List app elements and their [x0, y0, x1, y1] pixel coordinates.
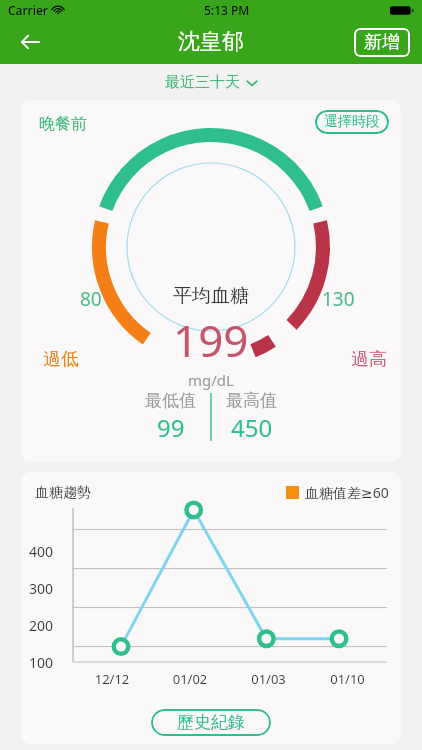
staticText: 5:13 PM	[204, 2, 250, 18]
staticText: 199	[173, 310, 249, 370]
staticText: mg/dL	[188, 370, 234, 390]
staticText: 最高值	[226, 390, 277, 411]
staticText: 沈皇郁	[178, 28, 244, 56]
staticText: 12/12	[73, 670, 151, 688]
staticText: 99	[157, 411, 185, 444]
staticText: 200	[29, 616, 54, 635]
staticText: 01/10	[308, 670, 387, 688]
staticText: 晚餐前	[39, 114, 87, 134]
staticText: 過高	[351, 348, 387, 371]
staticText: 歷史紀錄	[177, 712, 245, 733]
staticText: 01/02	[151, 670, 229, 688]
staticText: 平均血糖	[173, 284, 249, 308]
button[interactable]: 選擇時段	[315, 110, 389, 134]
button[interactable]: 最近三十天	[155, 69, 268, 96]
staticText: 新增	[364, 31, 400, 54]
staticText: 100	[29, 653, 54, 672]
staticText: 80	[80, 286, 102, 312]
staticText: Carrier	[8, 2, 48, 18]
staticText: 最近三十天	[165, 73, 240, 92]
staticText: 400	[29, 542, 54, 561]
staticText: 血糖值差≥60	[305, 483, 389, 502]
staticText: 過低	[43, 348, 79, 371]
button[interactable]: 歷史紀錄	[151, 709, 271, 736]
staticText: 130	[322, 286, 355, 312]
staticText: 血糖趨勢	[35, 484, 91, 502]
staticText: 01/03	[229, 670, 308, 688]
button[interactable]: 新增	[354, 28, 410, 57]
staticText: 最低值	[145, 390, 196, 411]
staticText: 選擇時段	[324, 113, 380, 131]
button[interactable]: Back	[8, 20, 52, 64]
staticText: 450	[231, 411, 273, 444]
staticText: 300	[29, 579, 54, 598]
